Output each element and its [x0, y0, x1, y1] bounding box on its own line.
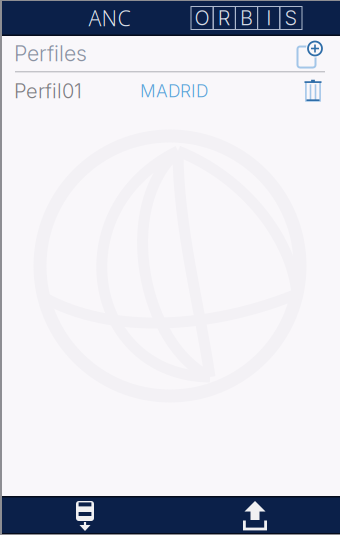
button[interactable]: Perfil01: [0, 72, 340, 109]
staticText: Perfil01: [14, 79, 82, 103]
button[interactable]: Send profiles: [170, 496, 340, 534]
staticText: B: [240, 6, 253, 30]
button[interactable]: New profile: [296, 39, 340, 67]
staticText: O: [195, 6, 210, 30]
staticText: R: [218, 6, 231, 30]
staticText: S: [284, 6, 297, 30]
staticText: Perfiles: [14, 41, 87, 66]
staticText: MADRID: [140, 80, 208, 101]
staticText: ANC: [88, 3, 130, 33]
button[interactable]: Load profiles: [0, 496, 170, 534]
staticText: I: [266, 6, 271, 30]
